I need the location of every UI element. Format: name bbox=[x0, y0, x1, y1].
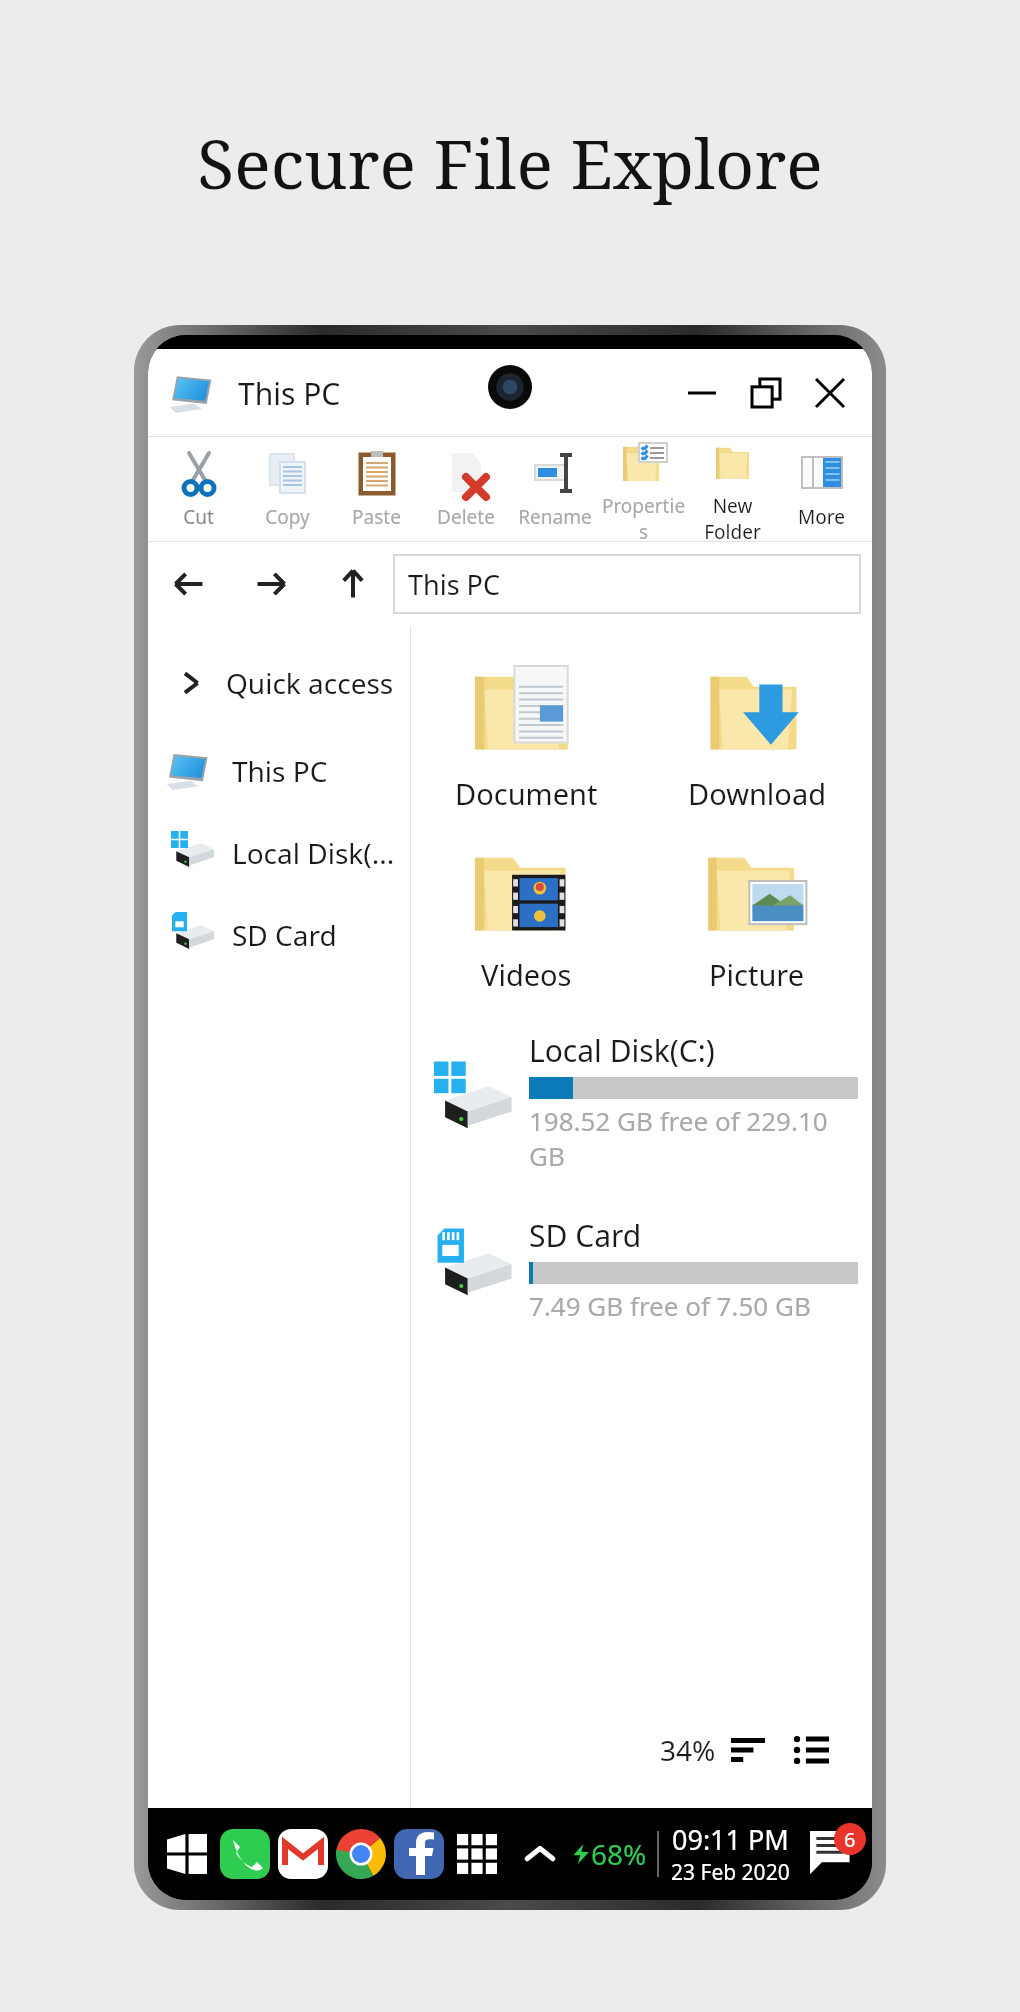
button[interactable]: Minimize bbox=[670, 361, 734, 425]
staticText: 6 bbox=[844, 1826, 856, 1853]
button[interactable]: Local Disk(C:) bbox=[411, 1030, 872, 1173]
staticText: Secure File Explore bbox=[0, 116, 1020, 209]
staticText: Properties bbox=[599, 493, 688, 541]
staticText: Rename bbox=[518, 504, 592, 530]
button[interactable]: Videos bbox=[411, 823, 641, 1004]
button[interactable]: Phone bbox=[216, 1825, 274, 1883]
staticText: Quick access bbox=[226, 664, 394, 702]
button[interactable]: Close bbox=[798, 361, 862, 425]
button[interactable]: Delete bbox=[421, 437, 510, 541]
staticText: SD Card bbox=[232, 916, 337, 954]
staticText: Delete bbox=[437, 504, 495, 530]
button[interactable]: Start bbox=[158, 1825, 216, 1883]
button[interactable]: Up bbox=[312, 543, 394, 625]
staticText: This PC bbox=[238, 373, 341, 414]
button[interactable]: Maximize bbox=[734, 361, 798, 425]
staticText: 7.49 GB free of 7.50 GB bbox=[529, 1288, 811, 1323]
staticText: 198.52 GB free of 229.10 GB bbox=[529, 1103, 858, 1173]
button[interactable]: SD Card bbox=[148, 894, 410, 976]
button[interactable]: More bbox=[777, 437, 866, 541]
button[interactable]: Picture bbox=[641, 823, 872, 1004]
staticText: 23 Feb 2020 bbox=[671, 1858, 790, 1887]
button[interactable]: SD Card bbox=[411, 1215, 872, 1323]
button[interactable]: Quick access bbox=[148, 648, 410, 718]
staticText: Paste bbox=[352, 504, 401, 530]
staticText: Local Disk(... bbox=[232, 834, 395, 872]
button[interactable]: Sort bbox=[716, 1718, 780, 1782]
button[interactable]: Properties bbox=[599, 437, 688, 541]
button[interactable]: All apps bbox=[448, 1825, 506, 1883]
staticText: This PC bbox=[232, 752, 328, 790]
staticText: This PC bbox=[408, 566, 501, 603]
staticText: More bbox=[798, 504, 845, 530]
button[interactable]: Cut bbox=[154, 437, 243, 541]
button[interactable]: Paste bbox=[332, 437, 421, 541]
staticText: Videos bbox=[481, 955, 572, 994]
staticText: Document bbox=[455, 774, 598, 813]
button[interactable]: New Folder bbox=[688, 437, 777, 541]
other: Expand bbox=[523, 1837, 557, 1871]
staticText: 34% bbox=[660, 1731, 716, 1769]
button[interactable]: Chrome bbox=[332, 1825, 390, 1883]
button[interactable]: Document bbox=[411, 642, 641, 823]
staticText: Download bbox=[688, 774, 826, 813]
button[interactable]: Messages bbox=[804, 1825, 862, 1883]
button[interactable]: Rename bbox=[510, 437, 599, 541]
button[interactable]: Back bbox=[148, 543, 230, 625]
button[interactable]: This PC bbox=[148, 730, 410, 812]
button[interactable]: Gmail bbox=[274, 1825, 332, 1883]
staticText: Picture bbox=[709, 955, 805, 994]
button[interactable]: List view bbox=[780, 1718, 844, 1782]
button[interactable]: This PC bbox=[394, 555, 860, 613]
staticText: SD Card bbox=[529, 1215, 642, 1256]
staticText: 09:11 PM bbox=[672, 1821, 789, 1858]
staticText: New Folder bbox=[688, 493, 777, 541]
button[interactable]: Forward bbox=[230, 543, 312, 625]
staticText: Cut bbox=[183, 504, 214, 530]
staticText: Local Disk(C:) bbox=[529, 1030, 715, 1071]
button[interactable]: Copy bbox=[243, 437, 332, 541]
button[interactable]: Download bbox=[641, 642, 872, 823]
button[interactable]: Facebook bbox=[390, 1825, 448, 1883]
staticText: 68% bbox=[591, 1835, 647, 1873]
staticText: Copy bbox=[265, 504, 310, 530]
button[interactable]: Local Disk(... bbox=[148, 812, 410, 894]
